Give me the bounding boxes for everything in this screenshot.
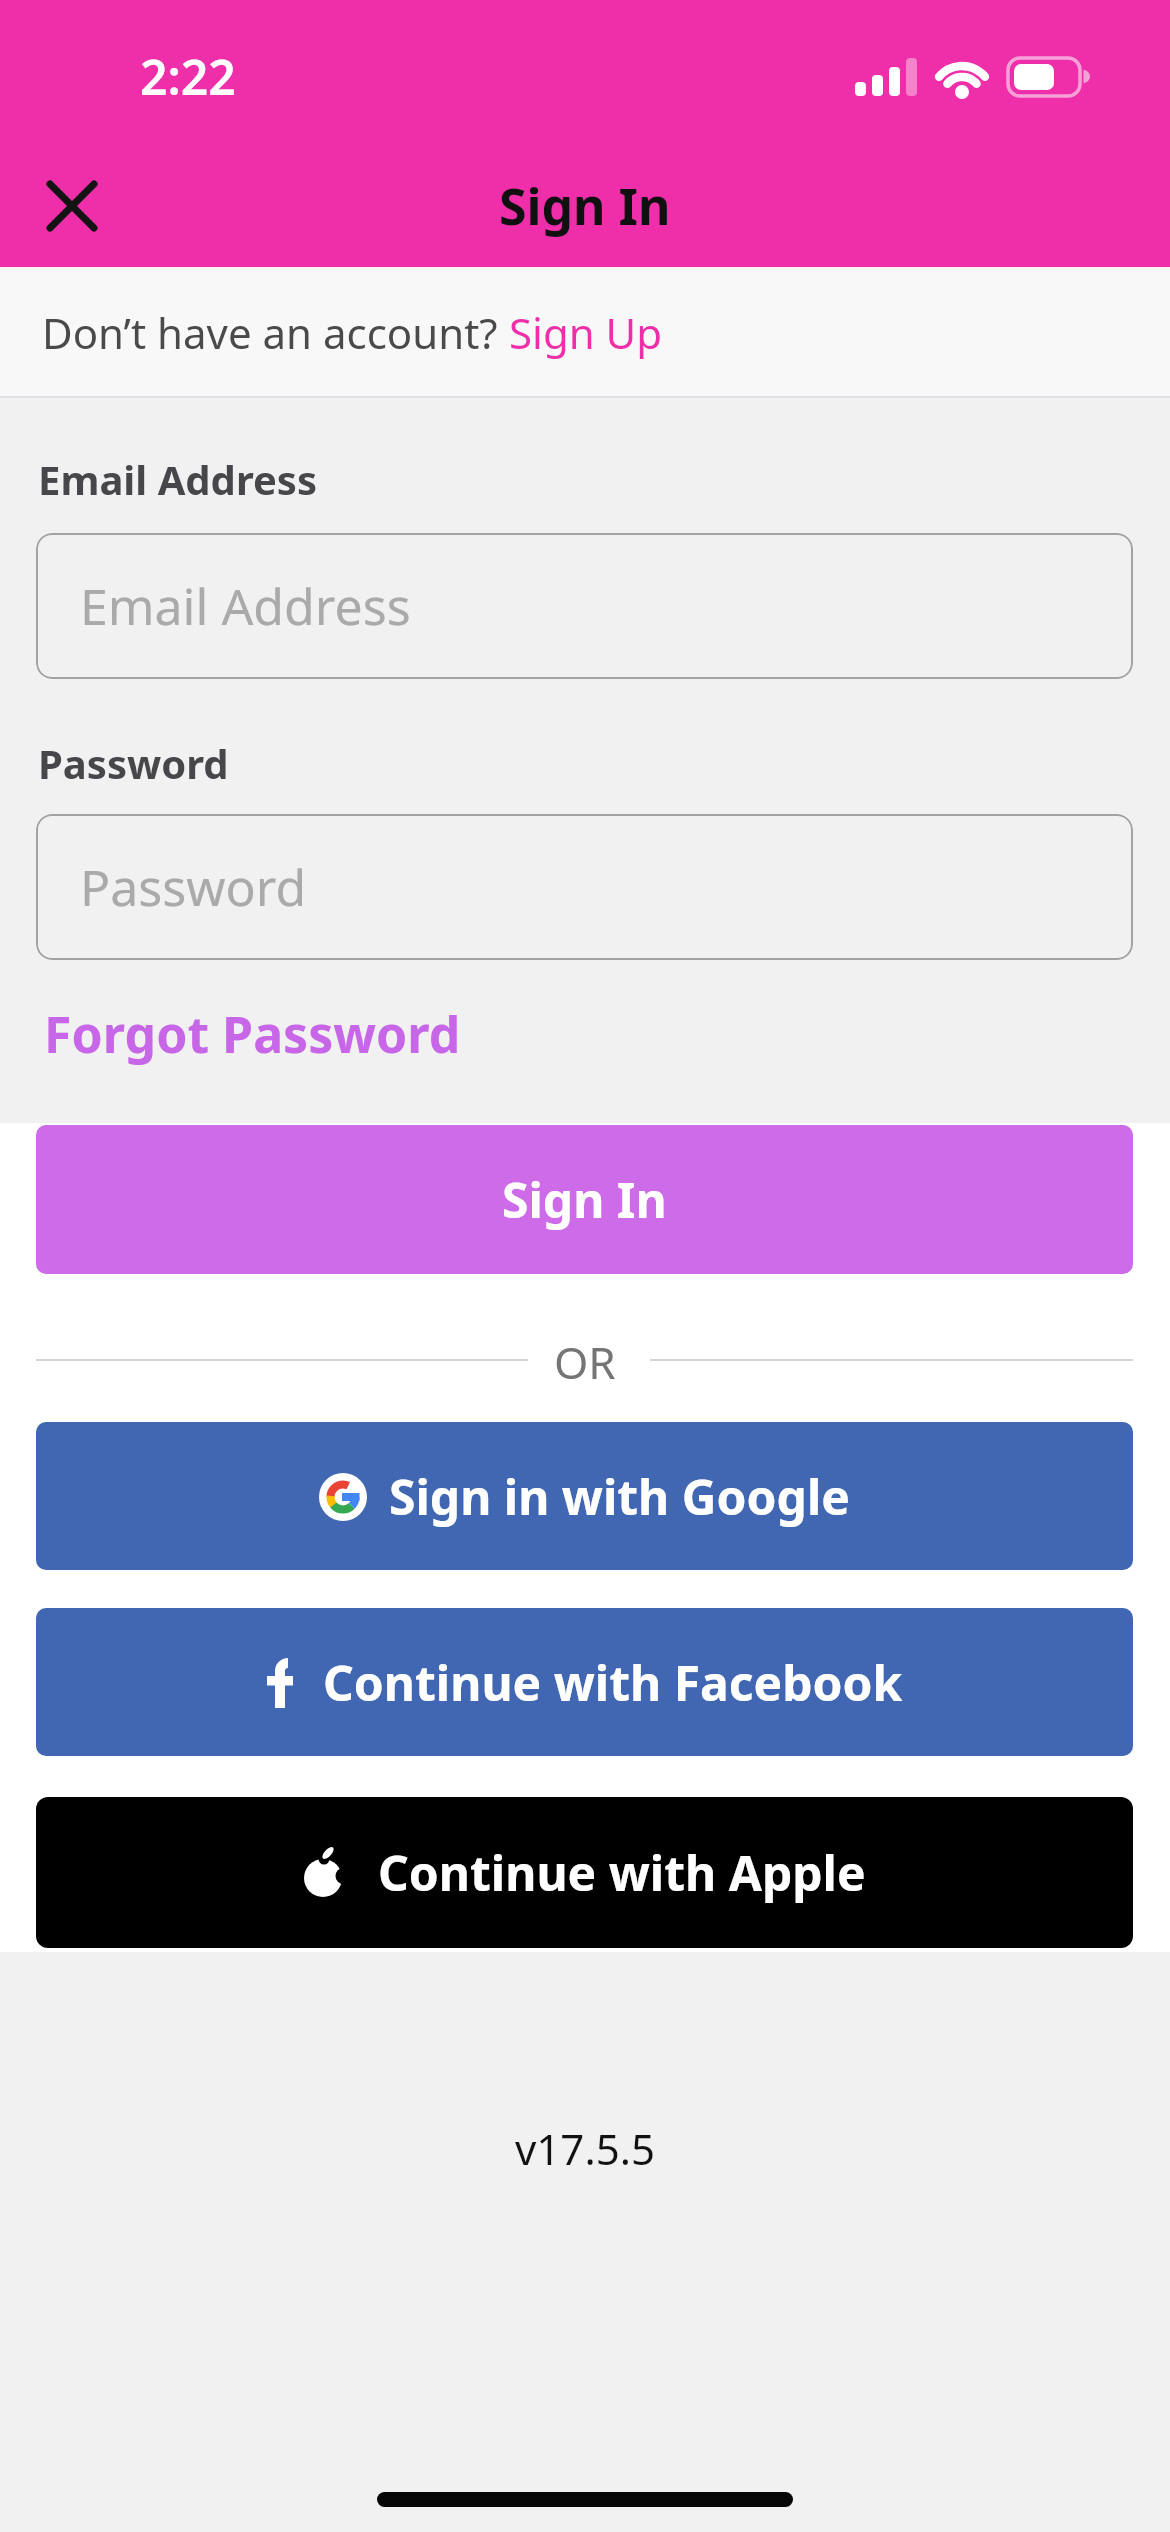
staticText: Email Address <box>80 572 411 640</box>
button[interactable]: Forgot Password <box>44 1000 461 1068</box>
button[interactable]: Continue with Apple <box>36 1797 1133 1948</box>
staticText: Password <box>80 853 307 921</box>
button[interactable]: Email Address <box>36 533 1133 679</box>
button[interactable]: Continue with Facebook <box>36 1608 1133 1756</box>
staticText: Password <box>38 736 229 790</box>
staticText: Sign In <box>499 172 671 240</box>
button[interactable]: Sign in with Google <box>36 1422 1133 1570</box>
button[interactable] <box>34 168 110 244</box>
staticText: Continue with Facebook <box>323 1650 903 1715</box>
staticText: Don’t have an account? <box>42 304 509 361</box>
staticText: v17.5.5 <box>515 2120 655 2177</box>
staticText: Sign in with Google <box>389 1464 850 1529</box>
staticText: OR <box>554 1332 616 1392</box>
staticText: Email Address <box>38 452 317 506</box>
staticText: Continue with Apple <box>378 1840 866 1905</box>
button[interactable]: Password <box>36 814 1133 960</box>
staticText: 2:22 <box>140 44 236 109</box>
staticText: Sign In <box>502 1167 667 1232</box>
button[interactable]: Sign In <box>36 1125 1133 1274</box>
button[interactable]: Sign Up <box>509 304 663 361</box>
